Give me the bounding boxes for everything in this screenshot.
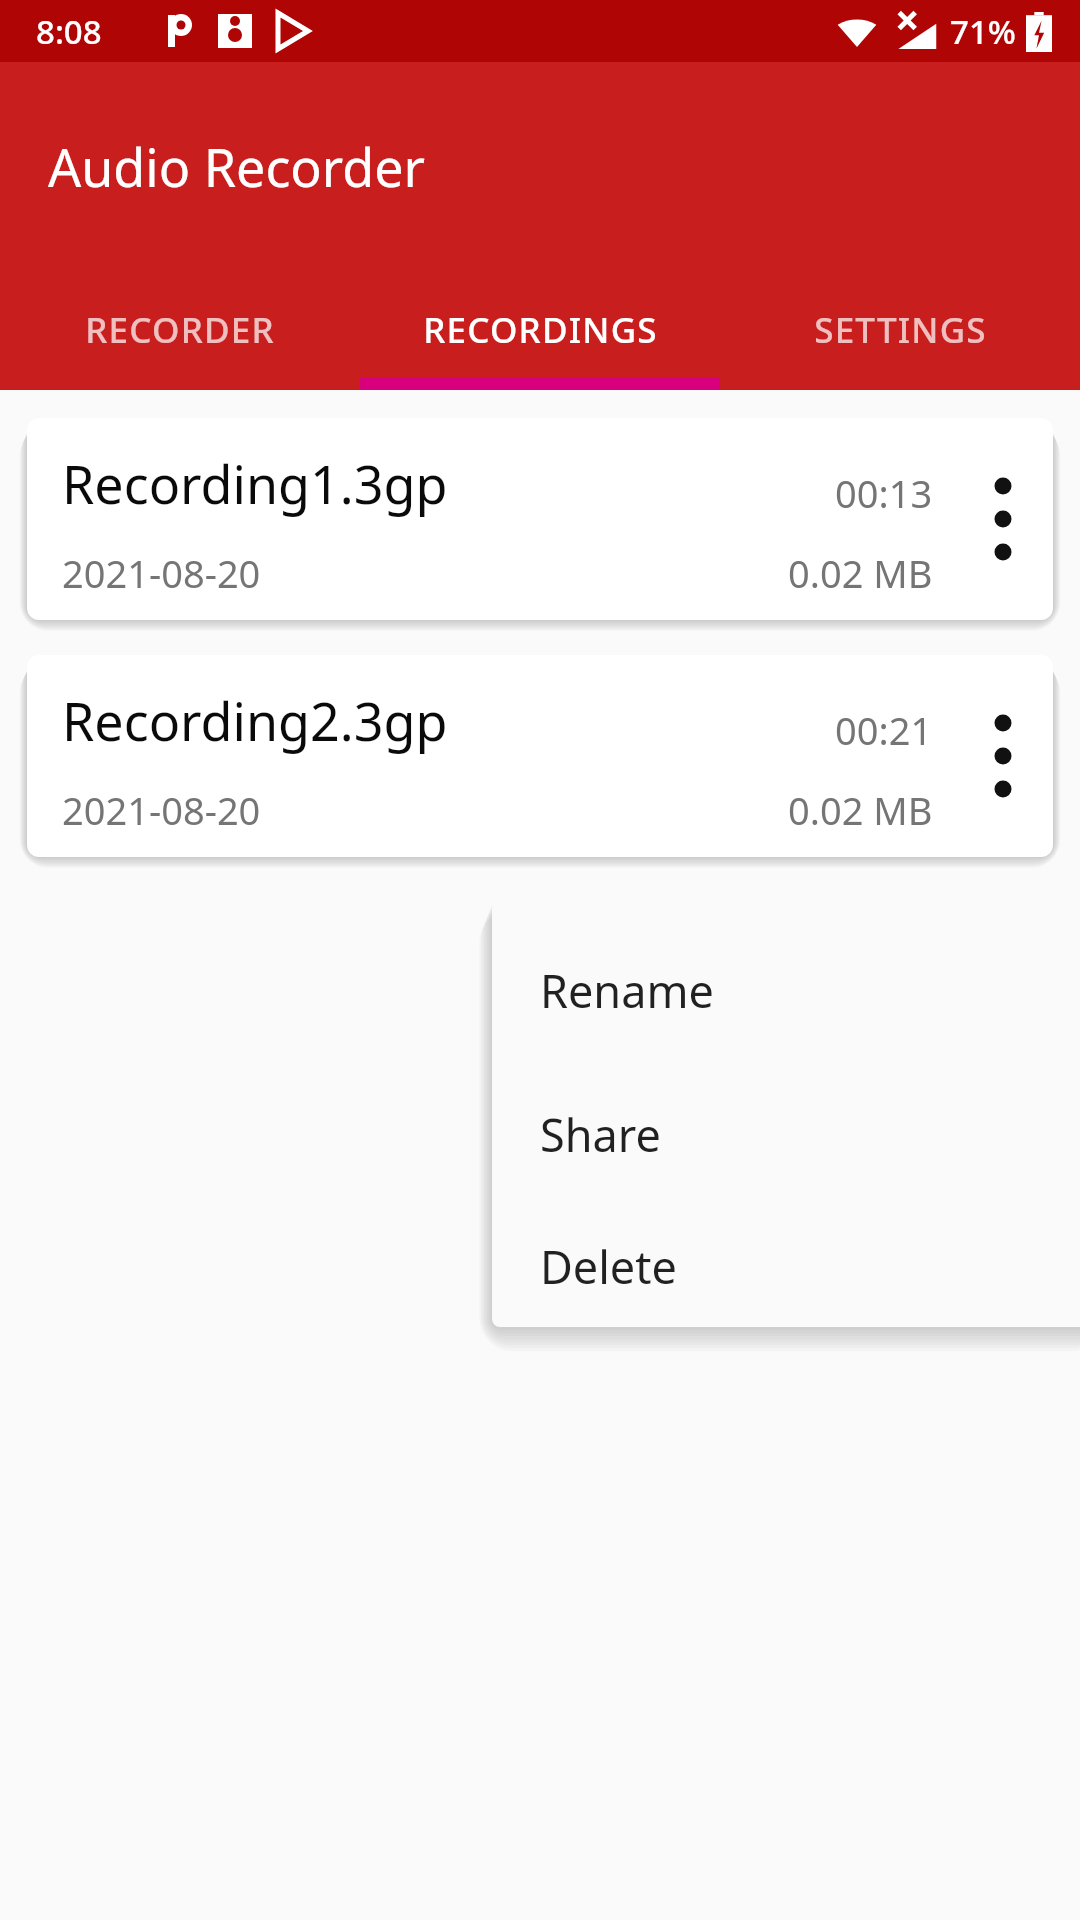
staticText: 8:08 bbox=[36, 9, 102, 54]
button[interactable]: Delete bbox=[492, 1206, 1080, 1327]
staticText: Delete bbox=[540, 1236, 677, 1297]
staticText: Recording1.3gp bbox=[62, 448, 835, 519]
staticText: 2021-08-20 bbox=[62, 547, 788, 599]
staticText: Rename bbox=[540, 960, 714, 1021]
staticText: SETTINGS bbox=[814, 306, 987, 354]
button[interactable]: Recording2.3gp bbox=[27, 655, 1053, 857]
staticText: Audio Recorder bbox=[48, 131, 426, 202]
staticText: 0.02 MB bbox=[788, 784, 933, 836]
staticText: 0.02 MB bbox=[788, 547, 933, 599]
staticText: 2021-08-20 bbox=[62, 784, 788, 836]
button[interactable]: Share bbox=[492, 1062, 1080, 1206]
staticText: RECORDER bbox=[85, 306, 275, 354]
button[interactable]: Rename bbox=[492, 918, 1080, 1062]
staticText: 00:13 bbox=[835, 467, 933, 519]
staticText: Recording2.3gp bbox=[62, 685, 835, 756]
button[interactable]: RECORDINGS bbox=[360, 270, 720, 390]
button[interactable]: Recording1.3gp bbox=[27, 418, 1053, 620]
button[interactable]: RECORDER bbox=[0, 270, 360, 390]
button[interactable]: More options bbox=[953, 655, 1053, 857]
staticText: 00:21 bbox=[835, 704, 933, 756]
button[interactable]: More options bbox=[953, 418, 1053, 620]
button[interactable]: SETTINGS bbox=[720, 270, 1080, 390]
staticText: 71% bbox=[950, 9, 1016, 54]
staticText: RECORDINGS bbox=[423, 306, 658, 354]
staticText: Share bbox=[540, 1104, 661, 1165]
